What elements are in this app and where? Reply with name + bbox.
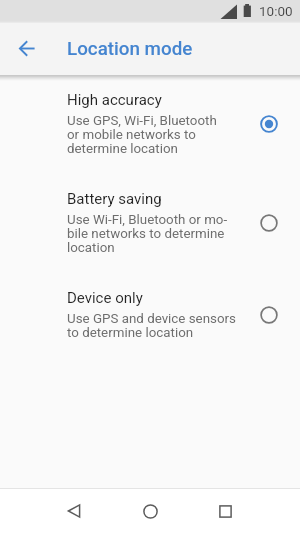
staticText: 10:00 bbox=[259, 3, 293, 19]
button[interactable]: Back bbox=[54, 491, 94, 531]
button[interactable]: Battery saving bbox=[0, 174, 300, 273]
button[interactable]: Device only bbox=[257, 303, 281, 327]
button[interactable]: Recent apps bbox=[205, 491, 245, 531]
button[interactable]: Navigate up bbox=[8, 30, 46, 68]
button[interactable]: Battery saving bbox=[257, 211, 281, 235]
button[interactable]: Device only bbox=[0, 273, 300, 358]
staticText: Use GPS and device sensors to determine … bbox=[67, 312, 236, 340]
staticText: Battery saving bbox=[67, 190, 162, 208]
button[interactable]: High accuracy bbox=[0, 75, 300, 174]
staticText: Use Wi-Fi, Bluetooth or mo- bile network… bbox=[67, 213, 228, 255]
staticText: Location mode bbox=[67, 38, 193, 60]
button[interactable]: High accuracy bbox=[257, 112, 281, 136]
staticText: High accuracy bbox=[67, 91, 162, 109]
button[interactable]: Home bbox=[130, 491, 170, 531]
staticText: Use GPS, Wi-Fi, Bluetooth or mobile netw… bbox=[67, 114, 217, 156]
staticText: Device only bbox=[67, 289, 143, 307]
